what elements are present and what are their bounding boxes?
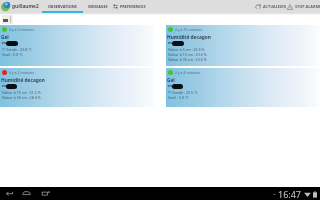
staticText: Humidité decagon [1,77,45,84]
staticText: m [168,83,173,89]
staticText: MESSAGES [88,4,108,9]
staticText: Seuil : 5.0 °C [2,52,23,57]
staticText: m [2,40,7,46]
button[interactable]: il y a 3 minutes [0,25,155,66]
staticText: Humidité decagon [167,34,211,41]
staticText: Gel [1,34,9,41]
staticText: m [168,40,173,46]
staticText: ACTUALISER [263,4,286,9]
staticText: T° Sonde : 23.8 °C [2,47,32,52]
staticText: Valeur à 30 cm : 28.4 % [2,95,41,100]
staticText: 16:47 [278,188,302,200]
staticText: STOP ALARME [295,4,320,9]
button[interactable]: Home [21,187,32,200]
button[interactable]: il y a 4 minutes [166,68,320,107]
button[interactable]: Choose parcel [2,15,13,24]
button[interactable]: il y a 2 minutes [0,68,155,107]
staticText: T° Sonde : 23.5 °C [168,90,198,95]
button[interactable]: guillaume2 [12,0,39,13]
staticText: m [2,83,7,89]
staticText: PREFERENCES [120,4,146,9]
staticText: il y a 3 minutes [9,27,35,32]
button[interactable]: il y a 15 minutes [166,25,320,66]
button[interactable]: Refresh [255,0,286,13]
button[interactable]: Back [5,187,15,200]
staticText: Seuil : 5.0 °C [168,95,189,100]
staticText: OBSERVATIONS [48,4,77,9]
button[interactable]: Stop alarm [287,0,320,13]
staticText: il y a 4 minutes [175,70,201,75]
staticText: guillaume2 [12,3,39,10]
staticText: Valeur à 15 cm : 33.6 % [168,52,207,57]
staticText: Valeur à 30 cm : 33.6 % [168,57,207,62]
staticText: Valeur à 5 cm : 33.6 % [168,47,205,52]
button[interactable]: Recent apps [40,187,51,200]
button[interactable]: PREFERENCES [113,0,153,13]
staticText: il y a 15 minutes [175,27,203,32]
staticText: il y a 2 minutes [9,70,35,75]
staticText: Gel [167,77,175,84]
button[interactable]: OBSERVATIONS [42,0,83,13]
staticText: Valeur à 15 cm : 31.3 % [2,90,41,95]
button[interactable]: MESSAGES [85,0,111,13]
